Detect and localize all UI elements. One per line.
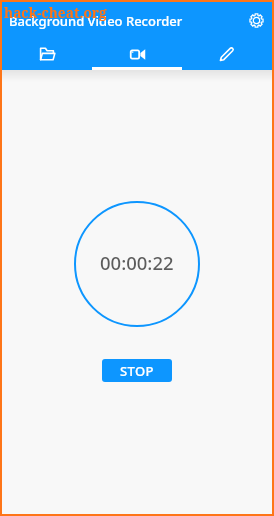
- staticText: 00:00:22: [100, 250, 174, 275]
- staticText: Background Video Recorder: [9, 12, 183, 30]
- button[interactable]: Edit: [182, 36, 272, 70]
- staticText: hack-cheat.org: [4, 3, 107, 22]
- button[interactable]: Settings: [244, 7, 268, 31]
- button[interactable]: STOP: [102, 359, 172, 382]
- staticText: STOP: [120, 362, 154, 380]
- button[interactable]: Recordings: [2, 36, 92, 70]
- button[interactable]: Record: [92, 36, 182, 70]
